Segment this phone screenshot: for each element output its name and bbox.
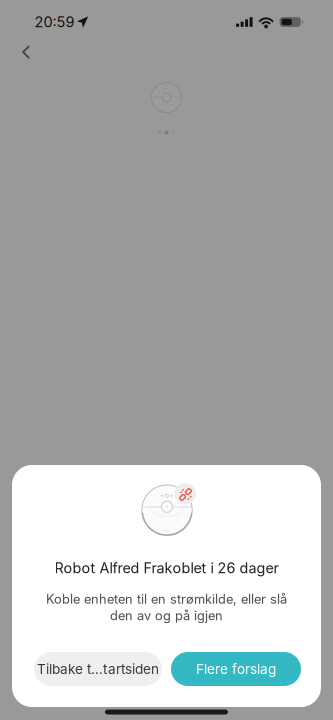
button[interactable]: Tilbake t…tartsiden bbox=[34, 652, 162, 686]
button[interactable]: Back bbox=[0, 44, 44, 66]
staticText: Flere forslag bbox=[196, 661, 276, 677]
staticText: Tilbake t…tartsiden bbox=[37, 661, 159, 677]
staticText: Koble enheten til en strømkilde, eller s… bbox=[46, 591, 287, 607]
button[interactable]: Flere forslag bbox=[171, 652, 301, 686]
staticText: Robot Alfred Frakoblet i 26 dager bbox=[54, 559, 278, 577]
staticText: 20:59 bbox=[34, 13, 74, 31]
staticText: den av og på igjen bbox=[110, 608, 223, 623]
